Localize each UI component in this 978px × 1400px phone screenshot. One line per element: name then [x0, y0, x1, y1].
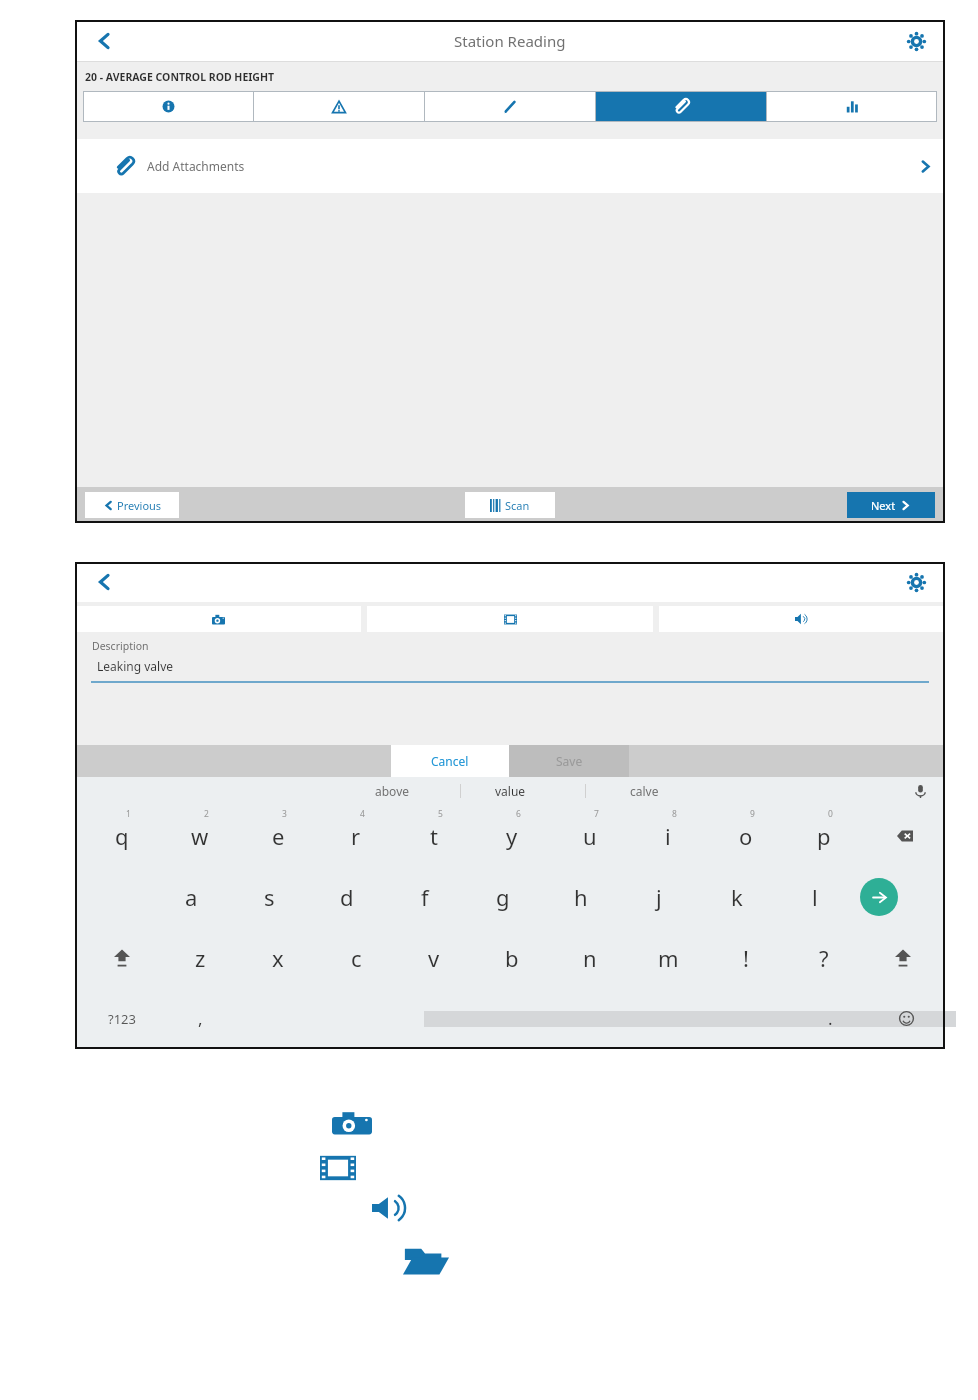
button[interactable]: y — [482, 805, 542, 866]
staticText: s — [264, 882, 275, 912]
staticText: r — [351, 821, 361, 851]
button[interactable]: Emoji — [883, 988, 929, 1049]
staticText: Save — [556, 753, 583, 769]
staticText: m — [658, 943, 679, 973]
staticText: j — [656, 882, 662, 912]
button[interactable]: j — [629, 866, 689, 927]
button[interactable]: Audio — [659, 606, 945, 632]
button[interactable]: r — [326, 805, 386, 866]
button[interactable]: b — [482, 927, 542, 988]
button[interactable]: Previous — [85, 492, 179, 518]
staticText: ! — [743, 943, 749, 973]
button[interactable]: , — [180, 988, 220, 1049]
button[interactable]: Cancel — [391, 745, 509, 777]
button[interactable]: a — [161, 866, 221, 927]
staticText: z — [195, 943, 206, 973]
button[interactable]: z — [170, 927, 230, 988]
staticText: Cancel — [431, 753, 469, 769]
staticText: p — [817, 821, 831, 851]
staticText: Previous — [117, 498, 162, 513]
button[interactable]: h — [551, 866, 611, 927]
staticText: e — [272, 821, 285, 851]
button[interactable]: ? — [794, 927, 854, 988]
button[interactable]: k — [707, 866, 767, 927]
button[interactable]: c — [326, 927, 386, 988]
staticText: Add Attachments — [147, 158, 245, 174]
button[interactable]: Tab 4 — [596, 91, 766, 122]
button[interactable]: n — [560, 927, 620, 988]
button[interactable]: w — [170, 805, 230, 866]
button[interactable]: ! — [716, 927, 776, 988]
staticText: c — [351, 943, 362, 973]
button[interactable]: Save — [509, 745, 629, 777]
button[interactable]: Back — [83, 562, 125, 602]
staticText: 3 — [282, 808, 287, 820]
staticText: d — [340, 882, 354, 912]
button[interactable]: u — [560, 805, 620, 866]
staticText: above — [375, 783, 409, 799]
staticText: x — [272, 943, 284, 973]
staticText: 1 — [126, 808, 131, 820]
staticText: Leaking valve — [97, 658, 173, 674]
button[interactable]: Tab 3 — [425, 91, 595, 122]
staticText: h — [574, 882, 588, 912]
button[interactable]: Tab 5 — [767, 91, 937, 122]
staticText: 2 — [204, 808, 209, 820]
staticText: n — [583, 943, 597, 973]
button[interactable]: q — [92, 805, 152, 866]
button[interactable]: Voice input — [909, 780, 931, 802]
staticText: 0 — [828, 808, 833, 820]
button[interactable]: m — [638, 927, 698, 988]
staticText: y — [506, 821, 518, 851]
button[interactable]: v — [404, 927, 464, 988]
staticText: i — [665, 821, 671, 851]
button[interactable]: Back — [83, 20, 125, 61]
button[interactable]: Backspace — [875, 805, 935, 866]
staticText: , — [198, 1007, 203, 1030]
button[interactable]: p — [794, 805, 854, 866]
staticText: . — [828, 1007, 833, 1030]
button[interactable]: Tab 1 — [83, 91, 253, 122]
button[interactable]: s — [239, 866, 299, 927]
button[interactable]: Space — [424, 1011, 956, 1027]
button[interactable]: Settings — [897, 563, 935, 601]
button[interactable]: Video — [367, 606, 653, 632]
staticText: 7 — [594, 808, 599, 820]
staticText: 5 — [438, 808, 443, 820]
button[interactable]: Settings — [897, 22, 935, 60]
button[interactable]: . — [810, 988, 850, 1049]
button[interactable]: Add Attachments — [75, 139, 945, 193]
button[interactable]: Tab 2 — [254, 91, 424, 122]
button[interactable]: Shift — [873, 927, 933, 988]
button[interactable]: f — [395, 866, 455, 927]
staticText: 4 — [360, 808, 365, 820]
button[interactable]: ?123 — [87, 988, 157, 1049]
staticText: q — [115, 821, 129, 851]
button[interactable]: Next — [847, 492, 935, 518]
staticText: k — [731, 882, 743, 912]
button[interactable]: x — [248, 927, 308, 988]
button[interactable]: Enter — [860, 878, 898, 916]
staticText: Scan — [505, 498, 530, 513]
staticText: b — [505, 943, 519, 973]
staticText: t — [430, 821, 438, 851]
button[interactable]: l — [785, 866, 845, 927]
staticText: 6 — [516, 808, 521, 820]
staticText: w — [191, 821, 209, 851]
button[interactable]: o — [716, 805, 776, 866]
staticText: a — [185, 882, 198, 912]
button[interactable]: g — [473, 866, 533, 927]
button[interactable]: Scan — [465, 492, 555, 518]
staticText: u — [583, 821, 597, 851]
button[interactable]: Camera — [75, 606, 361, 632]
button[interactable]: e — [248, 805, 308, 866]
button[interactable]: Shift — [92, 927, 152, 988]
staticText: value — [495, 783, 526, 799]
staticText: l — [812, 882, 818, 912]
button[interactable]: t — [404, 805, 464, 866]
button[interactable]: d — [317, 866, 377, 927]
button[interactable]: i — [638, 805, 698, 866]
staticText: 20 - AVERAGE CONTROL ROD HEIGHT — [85, 70, 275, 84]
staticText: 8 — [672, 808, 677, 820]
staticText: Station Reading — [454, 31, 566, 51]
